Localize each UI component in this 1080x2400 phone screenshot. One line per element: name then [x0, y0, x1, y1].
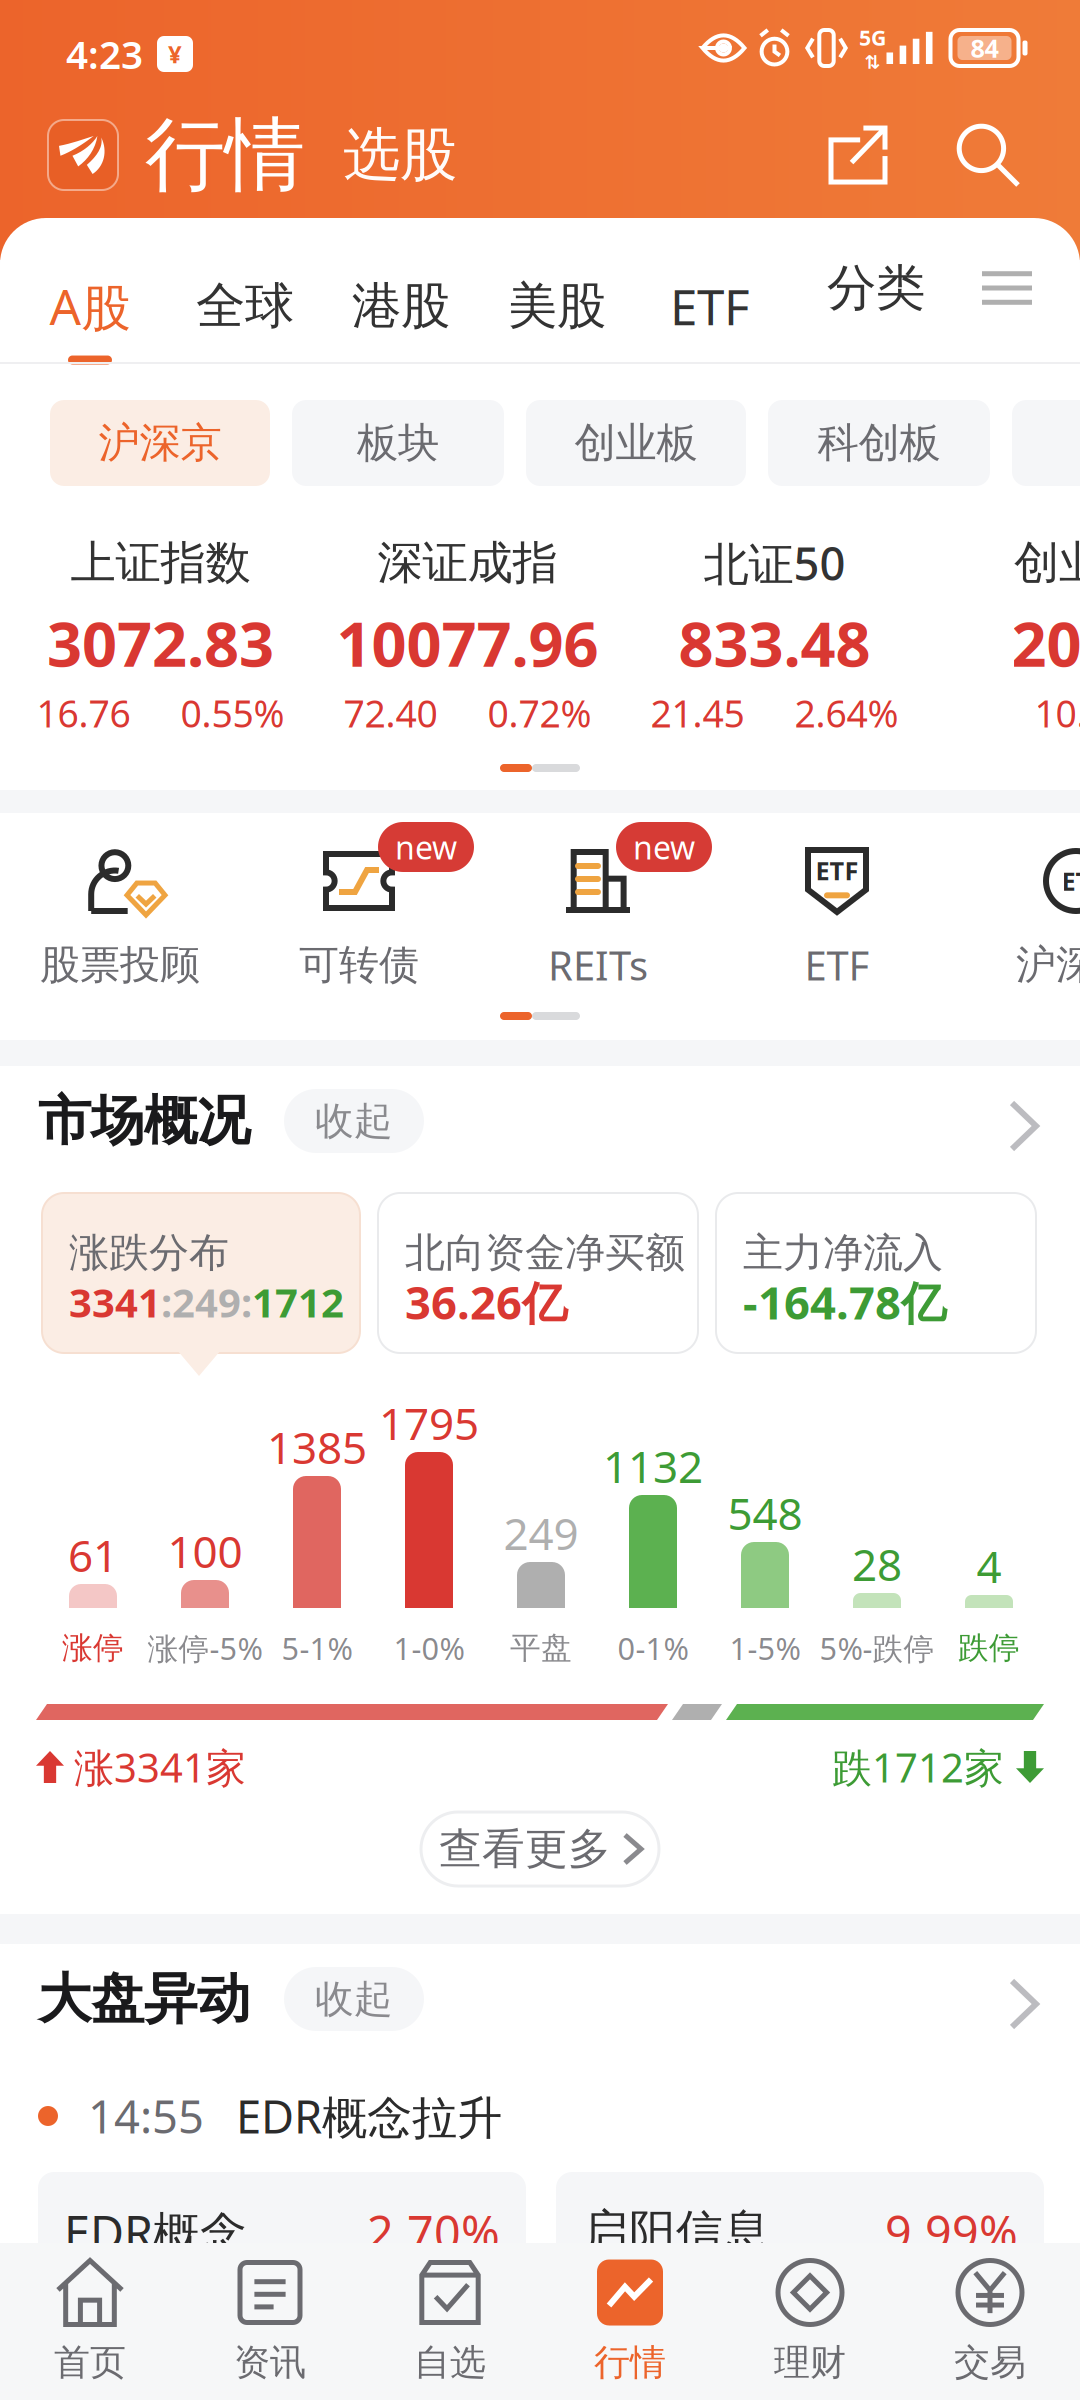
staticText: ETF	[670, 273, 750, 339]
staticText: 1712	[252, 1275, 344, 1328]
button[interactable]: 理财	[720, 2242, 900, 2399]
staticText: 100	[167, 1522, 242, 1580]
staticText: 收起	[315, 1097, 393, 1145]
staticText: new	[395, 826, 457, 868]
staticText: new	[633, 826, 695, 868]
staticText: REITs	[548, 938, 648, 991]
button[interactable]: 收起	[284, 1967, 424, 2031]
staticText: 分类	[827, 258, 925, 318]
staticText: 北证50	[703, 533, 845, 593]
staticText: 选股	[343, 120, 457, 190]
button[interactable]: 股票投顾	[0, 813, 239, 993]
staticText: ETF	[804, 938, 869, 991]
staticText: 沪深京	[98, 418, 221, 468]
staticText: 北向资金净买额	[405, 1228, 685, 1277]
button[interactable]: 启阳信息	[556, 2172, 1044, 2292]
staticText: 4:23	[66, 28, 143, 80]
staticText: -164.78亿	[743, 1272, 946, 1332]
button[interactable]: Search	[944, 111, 1032, 199]
button[interactable]: 交易	[900, 2242, 1080, 2399]
staticText: 涨停-5%	[147, 1628, 262, 1668]
staticText: 首页	[54, 2340, 126, 2385]
staticText: 9.99%	[885, 2201, 1018, 2263]
staticText: 平盘	[510, 1629, 572, 1667]
button[interactable]: 首页	[0, 2242, 180, 2399]
staticText: 理财	[774, 2340, 846, 2385]
staticText: 36.26亿	[405, 1272, 567, 1332]
button[interactable]: 科创板	[768, 400, 990, 486]
staticText: 3341	[69, 1275, 161, 1328]
button[interactable]: 全球	[198, 218, 292, 362]
button[interactable]: 创业板	[526, 400, 746, 486]
staticText: 0-1%	[617, 1628, 688, 1668]
button[interactable]: new	[239, 813, 478, 993]
staticText: 沪深股	[1016, 940, 1080, 989]
staticText: 5%-跌停	[819, 1628, 934, 1668]
staticText: 1385	[267, 1418, 367, 1476]
button[interactable]: ETF	[717, 813, 956, 993]
button[interactable]: ETF	[664, 218, 756, 362]
staticText: 收起	[315, 1975, 393, 2023]
staticText: :	[161, 1275, 172, 1328]
button[interactable]: 查看更多	[421, 1812, 659, 1886]
staticText: 深证成指	[377, 535, 557, 591]
staticText: 涨停	[62, 1629, 124, 1667]
staticText: 板块	[357, 418, 439, 468]
button[interactable]: 行情	[540, 2242, 720, 2399]
staticText: ⇅	[864, 52, 880, 73]
button[interactable]: A股	[48, 218, 132, 362]
staticText: 833.48	[678, 602, 870, 684]
button[interactable]: 自选	[360, 2242, 540, 2399]
button[interactable]: 选股	[343, 120, 457, 190]
staticText: 2.64%	[794, 688, 898, 738]
button[interactable]: 资讯	[180, 2242, 360, 2399]
staticText: 查看更多	[439, 1823, 611, 1875]
staticText: 1-5%	[729, 1628, 800, 1668]
staticText: 可转债	[299, 940, 419, 989]
staticText: ETF	[815, 854, 858, 887]
staticText: 28	[852, 1535, 902, 1593]
staticText: 1-0%	[393, 1628, 464, 1668]
staticText: 3072.83	[47, 602, 274, 684]
staticText: 上证指数	[70, 535, 250, 591]
button[interactable]: 板块	[292, 400, 504, 486]
staticText: ET	[1061, 864, 1080, 898]
button[interactable]: ET	[956, 813, 1080, 993]
button[interactable]: new	[478, 813, 717, 993]
staticText: 72.40	[343, 688, 437, 738]
staticText: 创业板	[574, 418, 697, 468]
staticText: 资讯	[234, 2340, 306, 2385]
staticText: 14:55	[88, 2086, 204, 2146]
button[interactable]: EDR概念	[38, 2172, 526, 2292]
staticText: 10.55	[1034, 688, 1080, 738]
button[interactable]: 分类	[815, 246, 937, 330]
button[interactable]: Share	[815, 112, 901, 198]
staticText: 1132	[603, 1437, 703, 1495]
button[interactable]: More	[994, 1085, 1054, 1167]
staticText: 跌1712家	[832, 1740, 1004, 1793]
staticText: 61	[68, 1526, 118, 1584]
staticText: 交易	[954, 2340, 1026, 2385]
staticText: A股	[49, 273, 130, 339]
staticText: 0.72%	[487, 688, 591, 738]
button[interactable]: 收起	[284, 1089, 424, 1153]
staticText: 全球	[196, 276, 294, 336]
staticText: 启阳信息	[582, 2203, 770, 2261]
staticText: EDR概念	[64, 2201, 247, 2263]
button[interactable]: 美股	[510, 218, 604, 362]
staticText: 自选	[414, 2340, 486, 2385]
staticText: 跌停	[958, 1629, 1020, 1667]
button[interactable]: Menu	[970, 259, 1044, 317]
button[interactable]: 沪深京	[50, 400, 270, 486]
button[interactable]: More	[994, 1963, 1054, 2045]
staticText: 5G	[859, 23, 886, 51]
staticText: 行情	[594, 2340, 666, 2385]
button[interactable]: 港股	[354, 218, 448, 362]
staticText: 大盘异动	[38, 1966, 250, 2032]
staticText: EDR概念拉升	[236, 2086, 502, 2146]
staticText: 249	[503, 1504, 578, 1562]
staticText: 科创板	[817, 418, 940, 468]
staticText: 行情	[145, 106, 305, 204]
staticText: 84	[970, 31, 998, 65]
